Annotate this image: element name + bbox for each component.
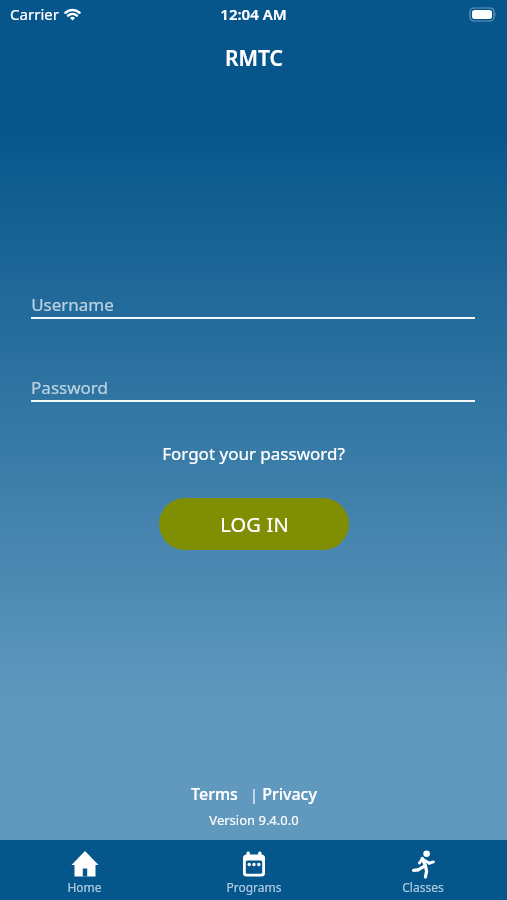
button[interactable]: LOG IN bbox=[159, 498, 349, 550]
button[interactable]: Programs bbox=[169, 840, 338, 900]
button[interactable]: Forgot your password? bbox=[162, 442, 345, 465]
staticText: Carrier bbox=[10, 4, 59, 24]
staticText: Terms bbox=[191, 783, 238, 805]
staticText: RMTC bbox=[225, 44, 283, 73]
staticText: Version 9.4.0.0 bbox=[209, 811, 299, 829]
staticText: LOG IN bbox=[220, 511, 289, 538]
staticText: Programs bbox=[226, 879, 282, 895]
staticText: Classes bbox=[402, 879, 444, 895]
button[interactable]: Password bbox=[31, 376, 475, 402]
button[interactable]: Username bbox=[31, 293, 475, 319]
button[interactable]: Terms bbox=[191, 783, 238, 805]
staticText: 12:04 AM bbox=[220, 4, 287, 24]
staticText: Forgot your password? bbox=[162, 442, 345, 465]
button[interactable]: Privacy bbox=[262, 783, 317, 805]
button[interactable]: Classes bbox=[338, 840, 507, 900]
staticText: Username bbox=[31, 293, 114, 316]
staticText: | bbox=[238, 784, 262, 804]
staticText: Privacy bbox=[262, 783, 317, 805]
staticText: Password bbox=[31, 376, 108, 399]
button[interactable]: Home bbox=[0, 840, 169, 900]
staticText: Home bbox=[67, 879, 102, 895]
